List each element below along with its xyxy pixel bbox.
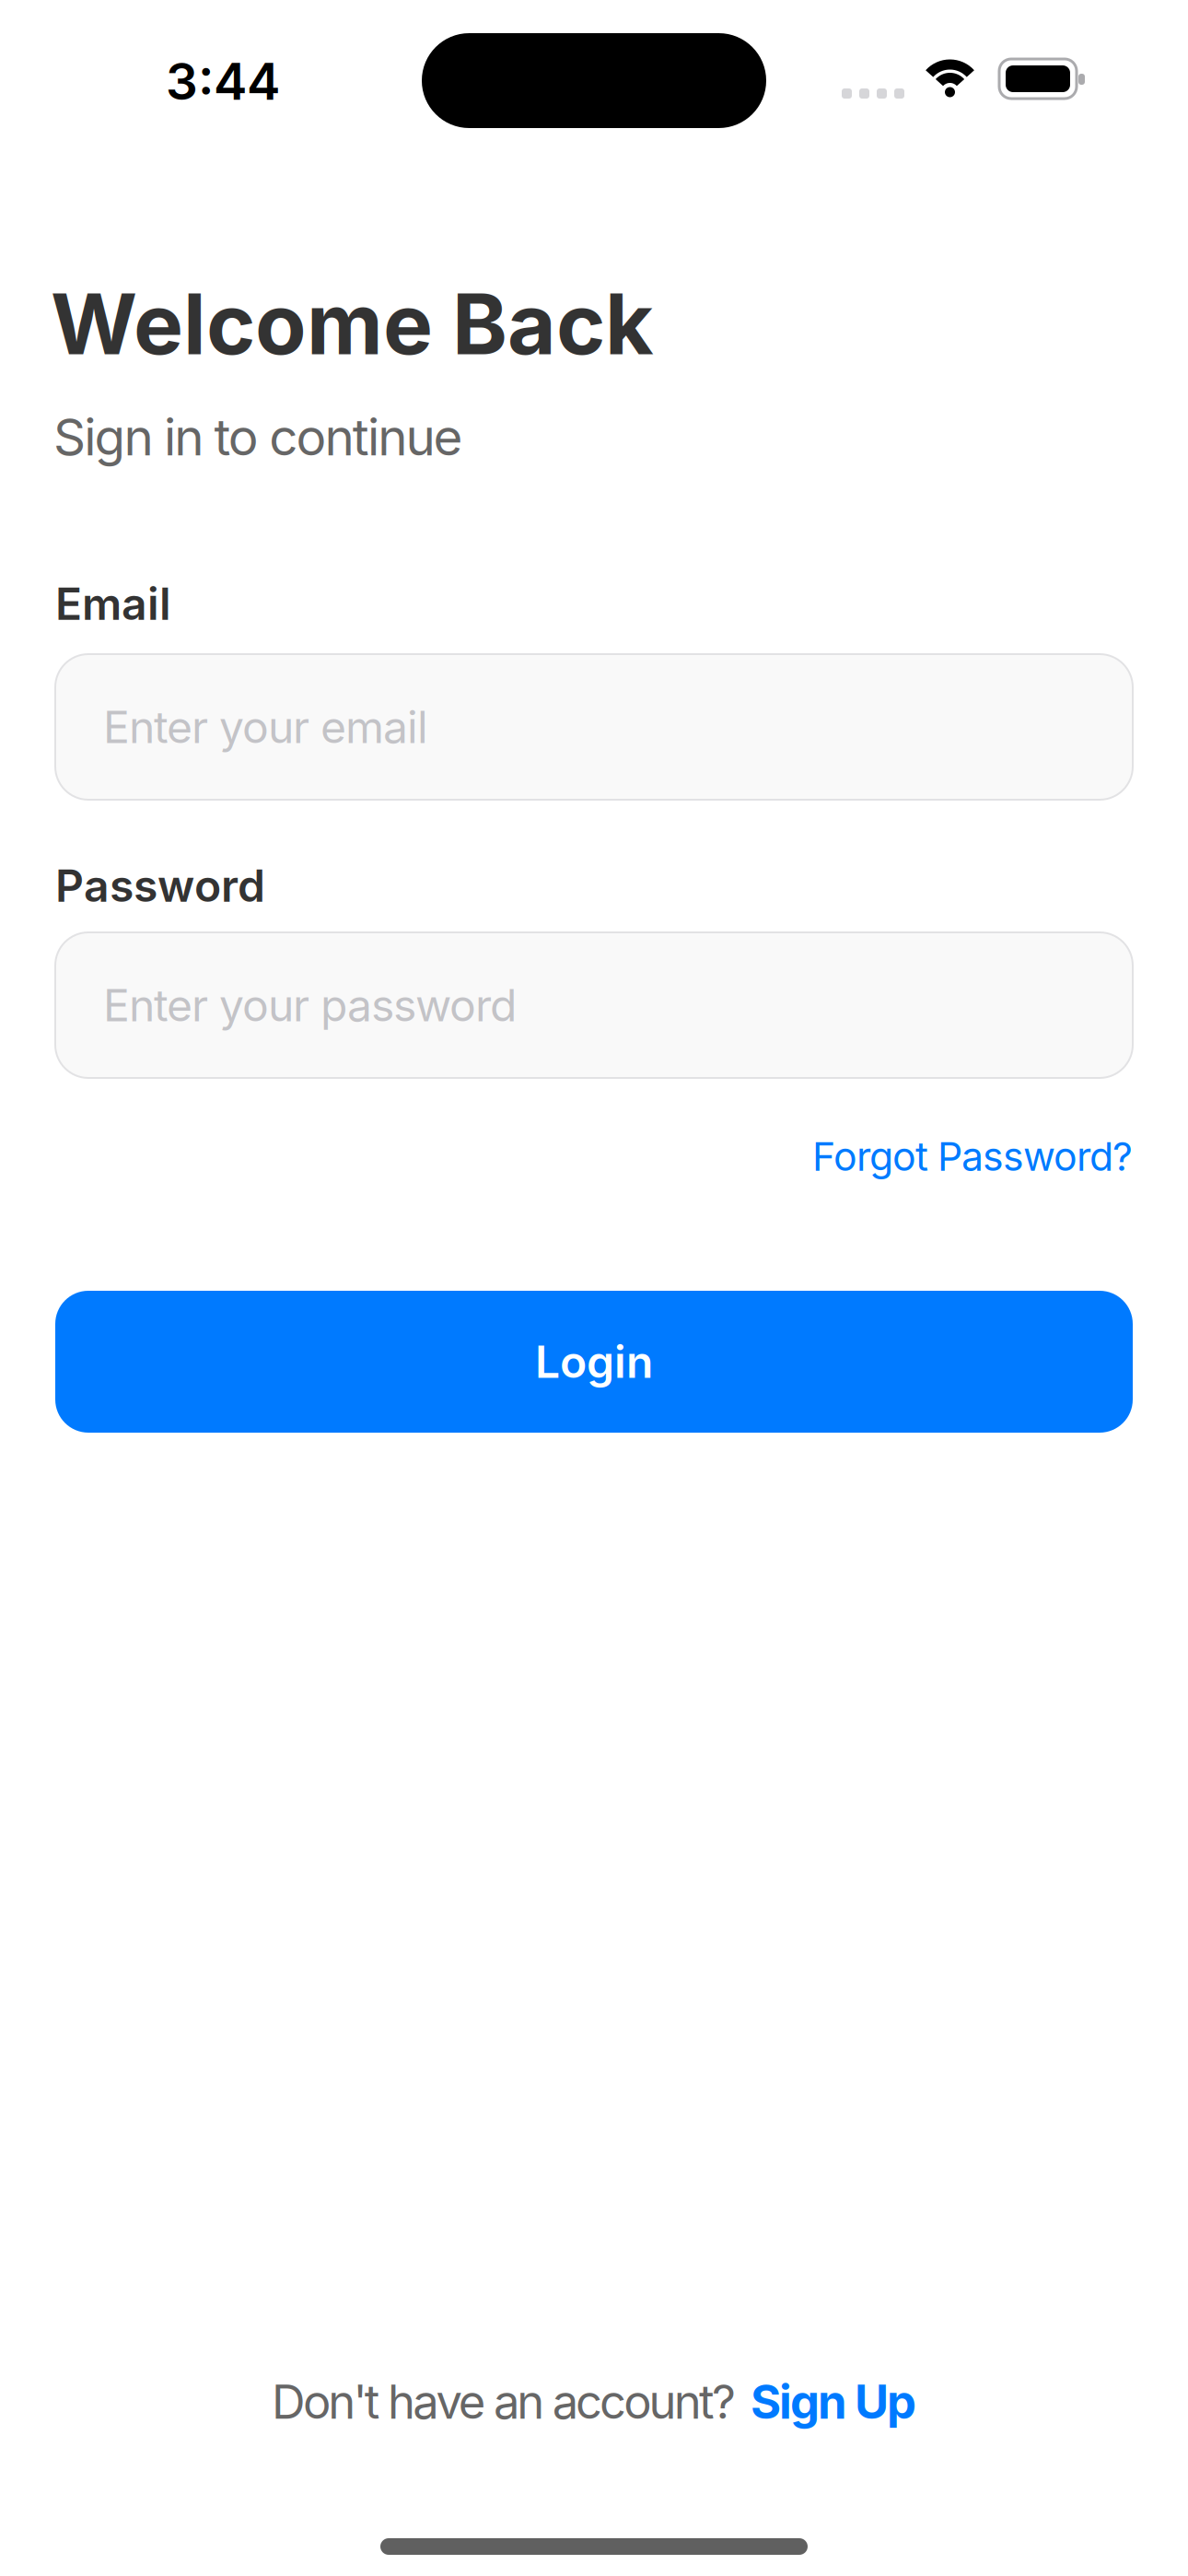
staticText: Sign in to continue [53, 407, 463, 467]
staticText: Welcome Back [51, 275, 654, 373]
staticText: Enter your password [103, 979, 517, 1031]
button[interactable]: Forgot Password? [812, 1133, 1133, 1180]
button[interactable]: Login [55, 1291, 1133, 1433]
button[interactable]: Sign Up [751, 2374, 916, 2429]
textField[interactable]: Enter your email [103, 715, 1133, 739]
staticText: Email [55, 578, 171, 630]
staticText: Login [535, 1336, 653, 1388]
staticText: Password [55, 860, 265, 912]
textField[interactable]: Enter your password [103, 993, 1133, 1017]
staticText: 3:44 [166, 52, 280, 111]
staticText: Enter your password [103, 993, 303, 1017]
staticText: Don't have an account? [272, 2374, 736, 2429]
staticText: Enter your email [103, 715, 259, 739]
staticText: Sign Up [751, 2374, 916, 2429]
staticText: Forgot Password? [812, 1133, 1133, 1180]
staticText: Enter your email [103, 701, 428, 753]
